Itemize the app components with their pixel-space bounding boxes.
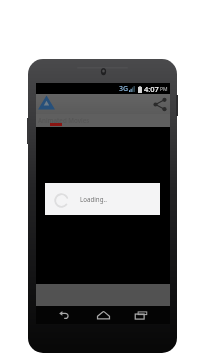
staticText: PM [160, 86, 168, 93]
staticText: Loading.. [80, 195, 107, 203]
button[interactable]: Animated Movies [36, 114, 170, 127]
staticText: 3G [119, 84, 129, 94]
staticText: 4:07 [144, 84, 159, 94]
button[interactable]: Back [48, 306, 80, 324]
staticText: Animated Movies [38, 116, 90, 124]
button[interactable]: App logo [38, 95, 55, 110]
button[interactable]: Share [151, 95, 169, 113]
button[interactable]: Recent apps [125, 306, 157, 324]
button[interactable]: Home [87, 306, 119, 324]
